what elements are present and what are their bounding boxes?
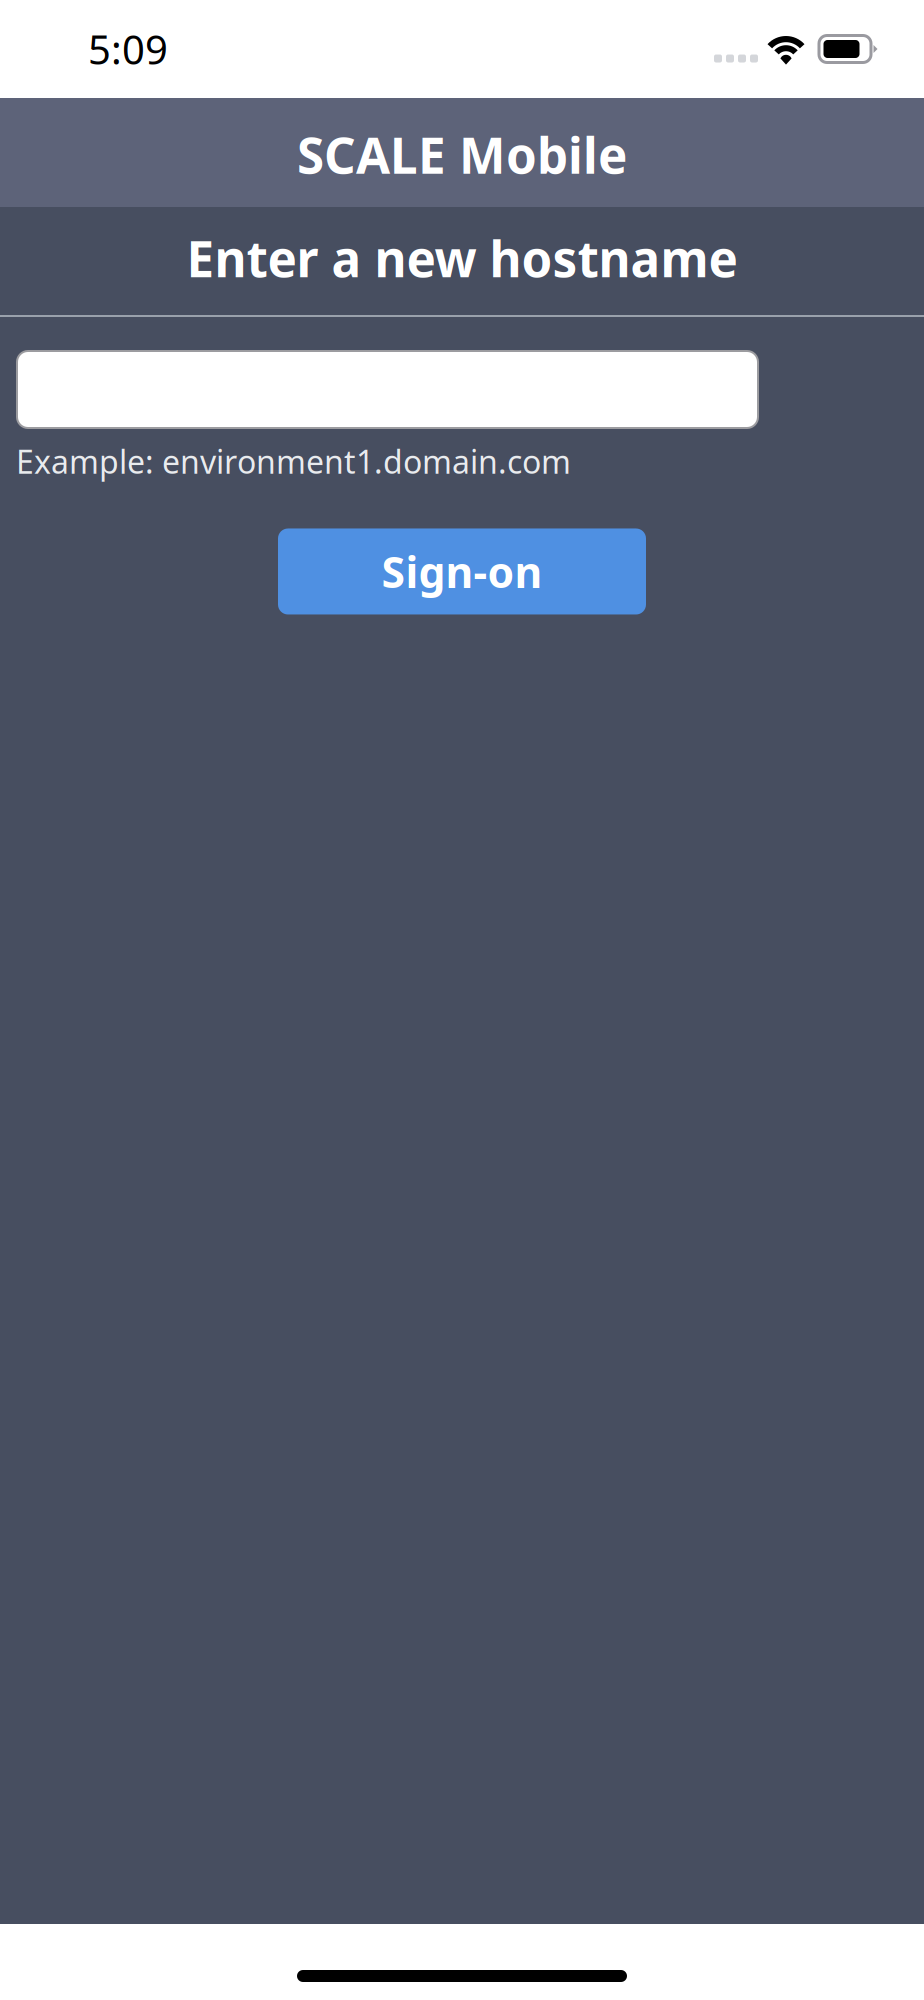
staticText: Example: environment1.domain.com [16, 440, 571, 482]
staticText: SCALE Mobile [297, 122, 627, 187]
staticText: Enter a new hostname [186, 225, 737, 291]
staticText: 5:09 [88, 22, 168, 75]
staticText: Sign-on [381, 543, 542, 600]
button[interactable]: Hostname [17, 351, 758, 428]
button[interactable]: Sign-on [278, 528, 646, 614]
